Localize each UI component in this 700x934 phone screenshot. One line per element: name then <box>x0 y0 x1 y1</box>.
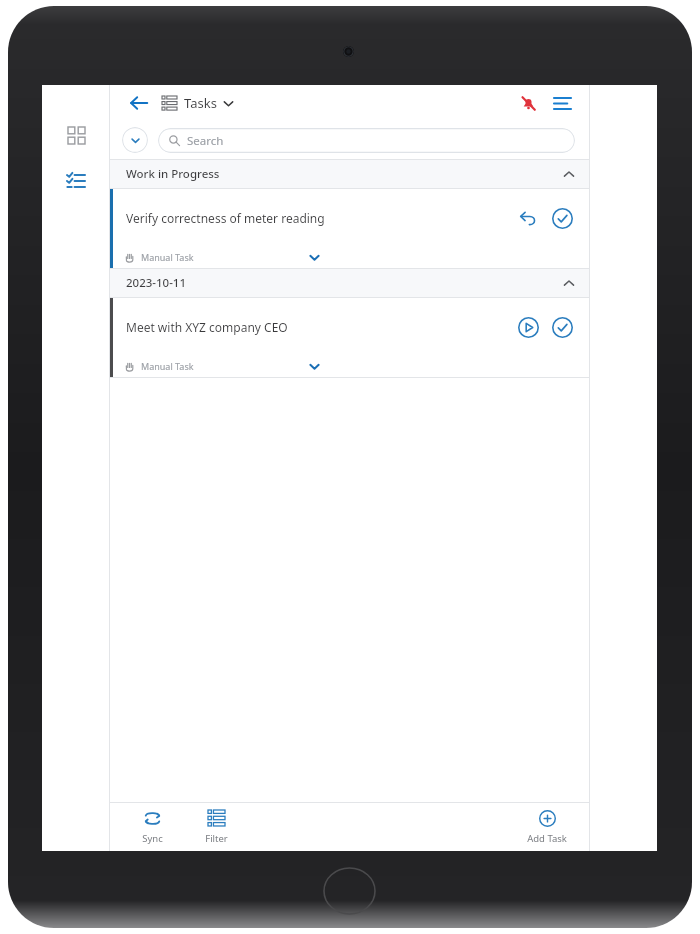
button[interactable]: Filter <box>188 810 244 845</box>
staticText: 2023-10-11 <box>126 275 187 291</box>
staticText: Work in Progress <box>126 166 220 182</box>
button[interactable]: Meet with XYZ company CEO <box>110 298 589 378</box>
staticText: Add Task <box>527 832 567 845</box>
staticText: Search <box>187 133 224 149</box>
button[interactable]: Undo <box>515 205 541 231</box>
staticText: Manual Task <box>141 360 194 372</box>
button[interactable]: Notifications off <box>513 88 543 118</box>
button[interactable]: Menu <box>547 88 577 118</box>
button[interactable]: Expand details <box>304 356 324 376</box>
staticText: Tasks <box>184 94 217 112</box>
staticText: Verify correctness of meter reading <box>126 210 325 226</box>
staticText: Meet with XYZ company CEO <box>126 319 288 335</box>
button[interactable]: 2023-10-11 <box>110 269 589 297</box>
staticText: Manual Task <box>141 251 194 263</box>
staticText: Filter <box>205 832 228 845</box>
button[interactable]: Start task <box>515 314 541 340</box>
button[interactable]: Apps <box>58 117 94 153</box>
staticText: Sync <box>142 832 163 845</box>
button[interactable]: Expand filters <box>122 127 148 153</box>
button[interactable]: Tasks list <box>58 163 94 199</box>
button[interactable]: Work in Progress <box>110 160 589 188</box>
button[interactable]: Search <box>158 128 575 153</box>
button[interactable]: Add Task <box>519 810 575 845</box>
button[interactable]: Sync <box>124 810 180 845</box>
button[interactable]: Complete task <box>549 314 575 340</box>
button[interactable]: Tasks <box>162 94 234 112</box>
button[interactable]: Back <box>124 88 154 118</box>
button[interactable]: Verify correctness of meter reading <box>110 189 589 269</box>
button[interactable]: Complete task <box>549 205 575 231</box>
button[interactable]: Expand details <box>304 247 324 267</box>
